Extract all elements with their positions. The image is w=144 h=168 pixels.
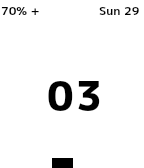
- staticText: 03: [47, 67, 105, 124]
- staticText: Sun 29: [99, 2, 140, 19]
- staticText: 70% +: [1, 2, 40, 19]
